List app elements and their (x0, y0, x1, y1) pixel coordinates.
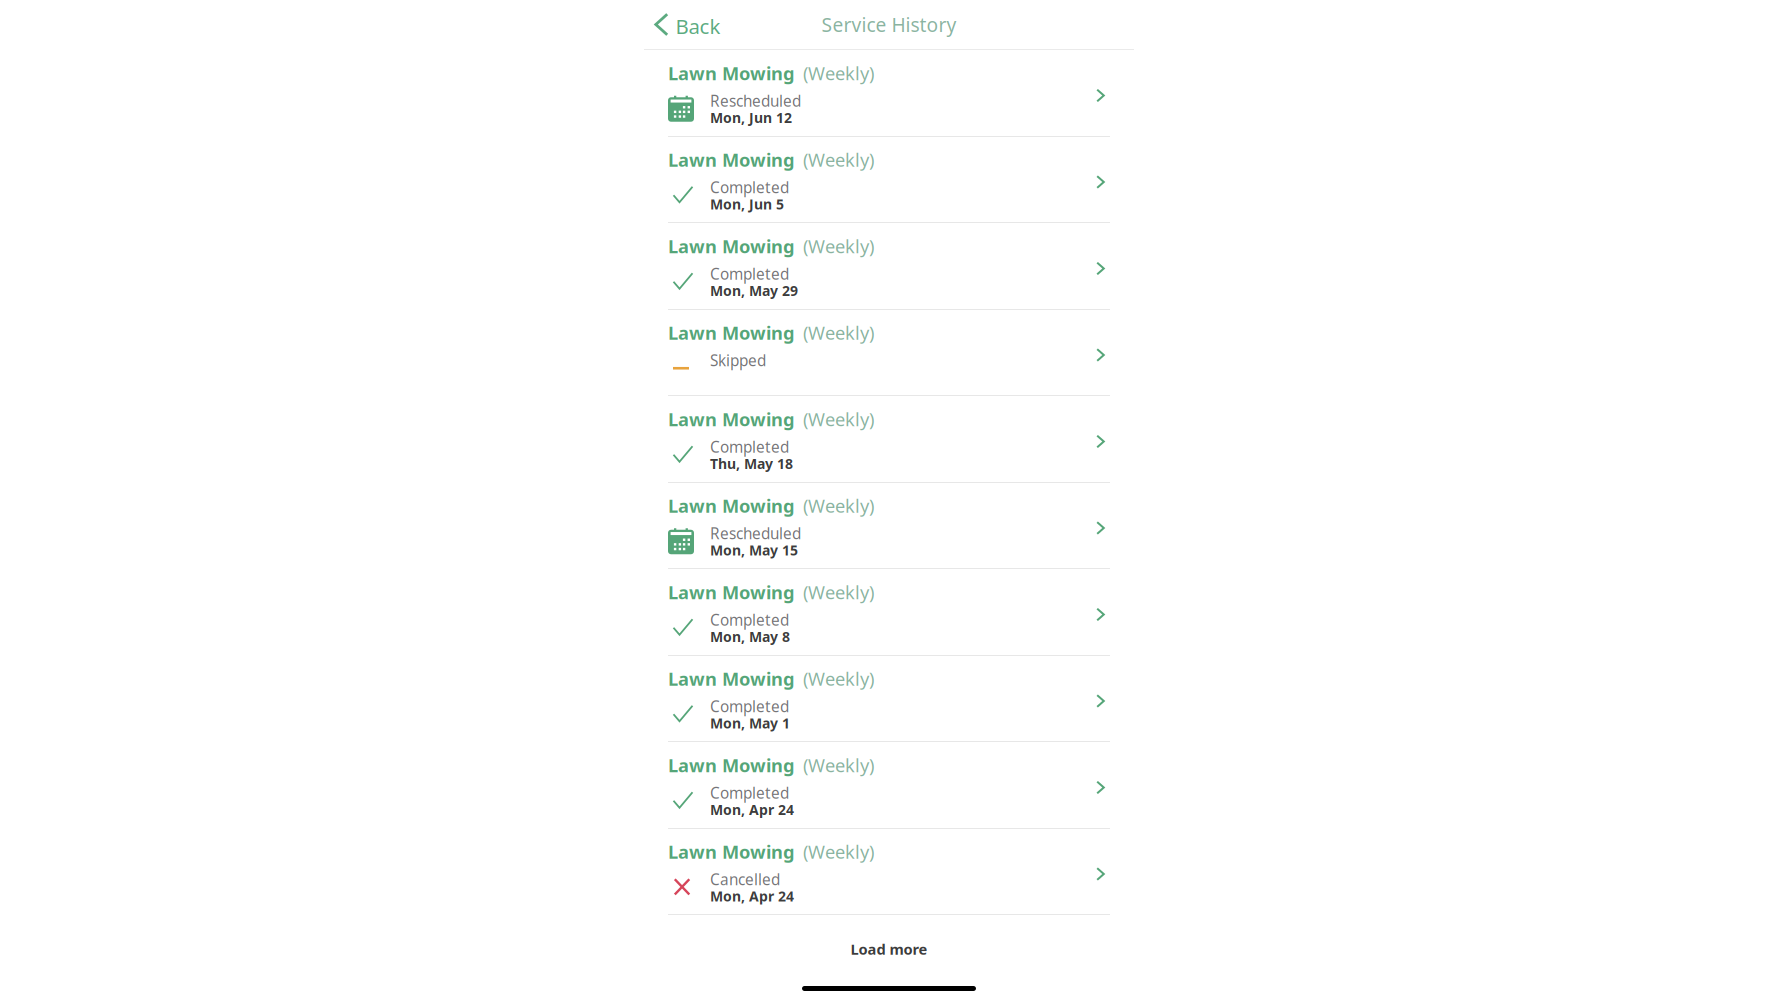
staticText: Completed (710, 609, 789, 630)
staticText: (Weekly) (803, 753, 874, 778)
staticText: Rescheduled (710, 523, 801, 544)
staticText: Lawn Mowing (668, 753, 795, 778)
staticText: (Weekly) (803, 493, 874, 518)
button[interactable]: Lawn Mowing (644, 50, 1134, 137)
button[interactable]: Lawn Mowing (644, 137, 1134, 223)
staticText: Completed (710, 436, 789, 457)
staticText: Lawn Mowing (668, 839, 795, 864)
staticText: Mon, Apr 24 (710, 800, 794, 819)
staticText: Mon, May 15 (710, 541, 798, 560)
button[interactable]: Lawn Mowing (644, 656, 1134, 742)
staticText: Lawn Mowing (668, 493, 795, 518)
staticText: Back (675, 12, 720, 40)
staticText: Lawn Mowing (668, 61, 795, 86)
staticText: Lawn Mowing (668, 147, 795, 172)
staticText: Service History (821, 11, 956, 38)
staticText: Thu, May 18 (710, 454, 793, 473)
staticText: (Weekly) (803, 666, 874, 691)
staticText: Mon, May 8 (710, 627, 790, 646)
staticText: (Weekly) (803, 407, 874, 432)
staticText: Completed (710, 263, 789, 284)
staticText: (Weekly) (803, 61, 874, 86)
staticText: Mon, Jun 5 (710, 195, 784, 214)
staticText: Completed (710, 782, 789, 803)
staticText: (Weekly) (803, 839, 874, 864)
staticText: Rescheduled (710, 90, 801, 111)
button[interactable]: Lawn Mowing (644, 396, 1134, 483)
button[interactable]: Lawn Mowing (644, 569, 1134, 656)
button[interactable]: Lawn Mowing (644, 483, 1134, 569)
staticText: Mon, Apr 24 (710, 887, 794, 906)
staticText: Skipped (710, 350, 766, 371)
button[interactable]: Load more (644, 915, 1134, 983)
staticText: Lawn Mowing (668, 580, 795, 605)
staticText: Lawn Mowing (668, 320, 795, 345)
staticText: Load more (850, 939, 927, 959)
staticText: Lawn Mowing (668, 407, 795, 432)
staticText: Lawn Mowing (668, 666, 795, 691)
staticText: (Weekly) (803, 234, 874, 259)
staticText: Lawn Mowing (668, 234, 795, 259)
button[interactable]: Lawn Mowing (644, 742, 1134, 829)
staticText: Mon, May 1 (710, 714, 790, 733)
staticText: Completed (710, 696, 789, 717)
staticText: Cancelled (710, 869, 780, 890)
staticText: Mon, Jun 12 (710, 108, 792, 127)
staticText: Mon, May 29 (710, 281, 798, 300)
staticText: (Weekly) (803, 147, 874, 172)
button[interactable]: Lawn Mowing (644, 223, 1134, 310)
button[interactable]: Lawn Mowing (644, 310, 1134, 396)
staticText: (Weekly) (803, 580, 874, 605)
staticText: Completed (710, 177, 789, 198)
button[interactable]: Back (644, 0, 734, 49)
staticText: (Weekly) (803, 320, 874, 345)
button[interactable]: Lawn Mowing (644, 829, 1134, 915)
